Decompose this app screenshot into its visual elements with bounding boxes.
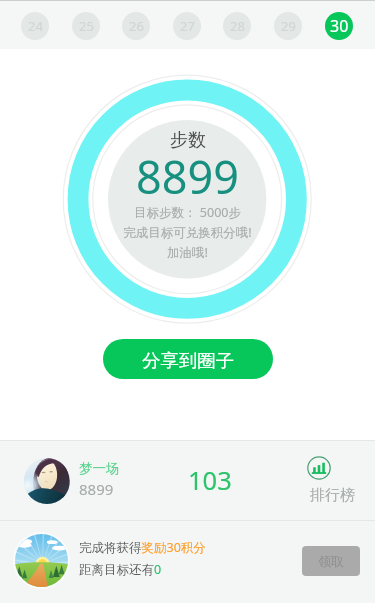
button[interactable]: 26 xyxy=(122,12,150,40)
button[interactable]: 29 xyxy=(274,12,302,40)
staticText: 步数 xyxy=(170,129,206,152)
staticText: 梦一场 xyxy=(79,460,120,477)
button[interactable]: 梦一场 xyxy=(0,441,375,520)
staticText: 完成将获得奖励30积分 距离目标还有0 xyxy=(79,539,206,578)
staticText: 领取 xyxy=(318,553,344,569)
button[interactable]: 25 xyxy=(72,12,100,40)
button[interactable]: 28 xyxy=(223,12,251,40)
button[interactable]: 27 xyxy=(173,12,201,40)
staticText: 排行榜 xyxy=(310,486,355,505)
button[interactable]: 30 xyxy=(325,12,353,40)
button[interactable]: 领取 xyxy=(302,546,360,576)
staticText: 目标步数： 5000步 完成目标可兑换积分哦! 加油哦! xyxy=(123,204,252,261)
staticText: 8899 xyxy=(136,146,239,207)
staticText: 29 xyxy=(281,17,296,35)
staticText: 30 xyxy=(330,15,349,37)
staticText: 28 xyxy=(230,17,245,35)
button[interactable]: 24 xyxy=(21,12,49,40)
staticText: 26 xyxy=(129,17,144,35)
staticText: 24 xyxy=(28,17,43,35)
button[interactable]: 排行榜 xyxy=(296,449,356,511)
staticText: 25 xyxy=(79,17,94,35)
staticText: 27 xyxy=(180,17,195,35)
staticText: 8899 xyxy=(79,479,114,499)
staticText: 分享到圈子 xyxy=(142,349,234,372)
button[interactable]: 分享到圈子 xyxy=(103,339,273,379)
staticText: 103 xyxy=(188,463,232,498)
